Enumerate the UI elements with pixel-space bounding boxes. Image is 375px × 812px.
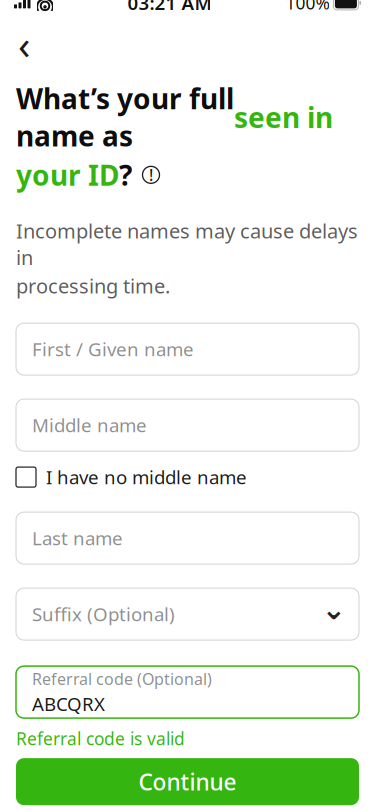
staticText: Incomplete names may cause delays in bbox=[16, 217, 358, 270]
button[interactable]: Last name bbox=[16, 512, 359, 564]
button[interactable]: First / Given name bbox=[16, 323, 359, 375]
staticText: ? bbox=[119, 156, 132, 193]
staticText: your ID bbox=[16, 156, 119, 193]
button[interactable]: Back bbox=[2, 24, 46, 64]
staticText: What’s your full name as bbox=[16, 80, 234, 154]
staticText: ABCQRX bbox=[32, 691, 105, 716]
staticText: Continue bbox=[138, 767, 236, 797]
staticText: processing time. bbox=[16, 272, 170, 299]
staticText: 03:21 AM bbox=[127, 0, 211, 15]
staticText: Middle name bbox=[32, 413, 147, 437]
staticText: Referral code is valid bbox=[16, 727, 185, 750]
staticText: First / Given name bbox=[32, 337, 194, 361]
staticText: I have no middle name bbox=[46, 465, 247, 489]
button[interactable]: I have no middle name bbox=[16, 465, 359, 489]
staticText: ⌄ bbox=[321, 592, 346, 626]
button[interactable]: Suffix (Optional) bbox=[16, 588, 359, 640]
staticText: ! bbox=[149, 164, 153, 185]
staticText: ‹ bbox=[18, 17, 30, 70]
staticText: Last name bbox=[32, 526, 123, 550]
staticText: 100% bbox=[285, 0, 329, 14]
staticText: seen in bbox=[234, 98, 333, 136]
button[interactable]: More information bbox=[140, 164, 162, 186]
staticText: Suffix (Optional) bbox=[32, 602, 175, 626]
button[interactable]: Referral code (Optional) bbox=[16, 666, 359, 718]
button[interactable]: Middle name bbox=[16, 399, 359, 451]
staticText: Referral code (Optional) bbox=[32, 668, 212, 689]
button[interactable]: Continue bbox=[16, 758, 359, 805]
